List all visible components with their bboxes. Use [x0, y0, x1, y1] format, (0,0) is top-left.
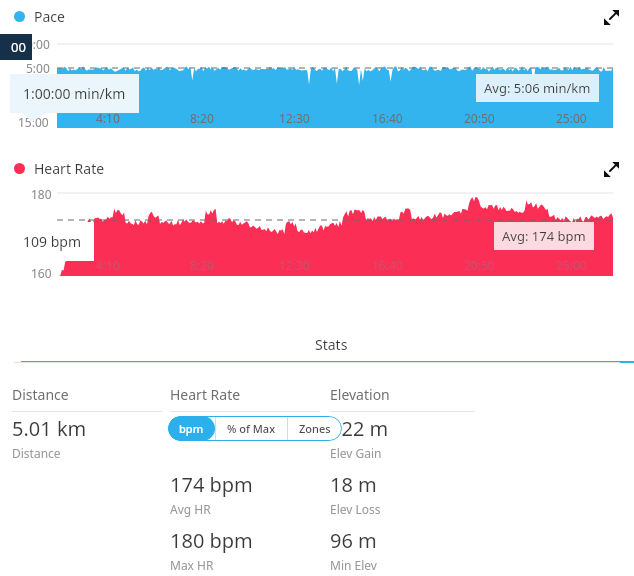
staticText: Zones [299, 421, 331, 436]
staticText: 12:30 [279, 110, 310, 126]
staticText: 96 m [330, 527, 377, 554]
staticText: 20:50 [464, 257, 495, 273]
staticText: Heart Rate [34, 159, 105, 178]
staticText: Elev Gain [330, 445, 382, 461]
staticText: Distance [12, 385, 69, 404]
staticText: Elev Loss [330, 501, 381, 517]
staticText: 1:00:00 min/km [23, 84, 126, 103]
staticText: Avg: 174 bpm [502, 227, 586, 245]
button[interactable]: Stats [14, 335, 634, 363]
staticText: Heart Rate [170, 385, 241, 404]
staticText: 8:20 [190, 257, 214, 273]
staticText: 16:40 [372, 257, 403, 273]
staticText: 8:20 [190, 110, 214, 126]
staticText: Avg HR [170, 501, 211, 517]
staticText: 170 [31, 224, 52, 240]
staticText: 16:40 [372, 110, 403, 126]
staticText: 122 m [330, 415, 389, 442]
staticText: 109 bpm [23, 232, 81, 251]
button[interactable]: bpm [168, 416, 215, 441]
staticText: 15:00 [18, 114, 49, 130]
staticText: 10:00 [18, 81, 49, 97]
button[interactable]: 5.01 km [12, 415, 87, 461]
button[interactable]: % of Max [216, 416, 287, 441]
button[interactable]: 180 bpm [170, 527, 253, 573]
staticText: 00 [11, 38, 26, 56]
staticText: Stats [315, 335, 348, 354]
button[interactable]: Expand chart [597, 3, 625, 31]
staticText: Min Elev [330, 557, 377, 573]
button[interactable]: Expand chart [597, 155, 625, 183]
button[interactable]: 122 m [330, 415, 389, 461]
staticText: 5:00 [26, 60, 50, 76]
staticText: 4:10 [96, 257, 120, 273]
staticText: 0:00 [26, 36, 50, 52]
staticText: 180 [31, 186, 52, 202]
staticText: Avg: 5:06 min/km [484, 79, 591, 97]
button[interactable]: Zones [288, 416, 342, 441]
button[interactable]: 18 m [330, 471, 381, 517]
staticText: 174 bpm [170, 471, 253, 498]
button[interactable]: Avg: 5:06 min/km [476, 74, 599, 102]
staticText: 4:10 [96, 110, 120, 126]
staticText: 5.01 km [12, 415, 87, 442]
staticText: 18 m [330, 471, 377, 498]
staticText: Distance [12, 445, 61, 461]
staticText: 160 [31, 265, 52, 281]
staticText: 20:50 [464, 110, 495, 126]
button[interactable]: Avg: 174 bpm [494, 222, 594, 250]
staticText: 12:30 [279, 257, 310, 273]
button[interactable]: 96 m [330, 527, 377, 573]
button[interactable]: Heart Rate [14, 159, 105, 178]
staticText: bpm [179, 421, 204, 436]
staticText: Pace [34, 7, 65, 26]
staticText: 25:00 [556, 257, 587, 273]
staticText: 25:00 [556, 110, 587, 126]
staticText: Elevation [330, 385, 390, 404]
staticText: % of Max [227, 421, 276, 436]
button[interactable]: Pace [14, 7, 65, 26]
button[interactable]: 174 bpm [170, 471, 253, 517]
staticText: 180 bpm [170, 527, 253, 554]
staticText: Max HR [170, 557, 214, 573]
